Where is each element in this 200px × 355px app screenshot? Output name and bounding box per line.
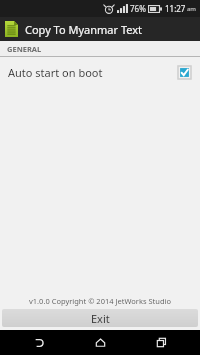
button[interactable]: Exit [2,309,198,327]
staticText: am [187,5,196,13]
button[interactable]: Back [17,330,61,355]
button[interactable]: Recent apps [139,330,183,355]
staticText: v1.0.0 Copyright © 2014 JetWorks Studio [29,296,171,306]
button[interactable]: Auto start on boot [0,57,200,88]
staticText: Copy To Myanmar Text [25,22,143,37]
staticText: 76% [130,3,146,14]
staticText: Exit [91,311,110,326]
staticText: GENERAL [7,44,42,54]
staticText: 11:27 [165,3,186,14]
staticText: Auto start on boot [8,65,103,80]
other: Auto start on boot checkbox [178,66,191,79]
button[interactable]: Home [78,330,122,355]
